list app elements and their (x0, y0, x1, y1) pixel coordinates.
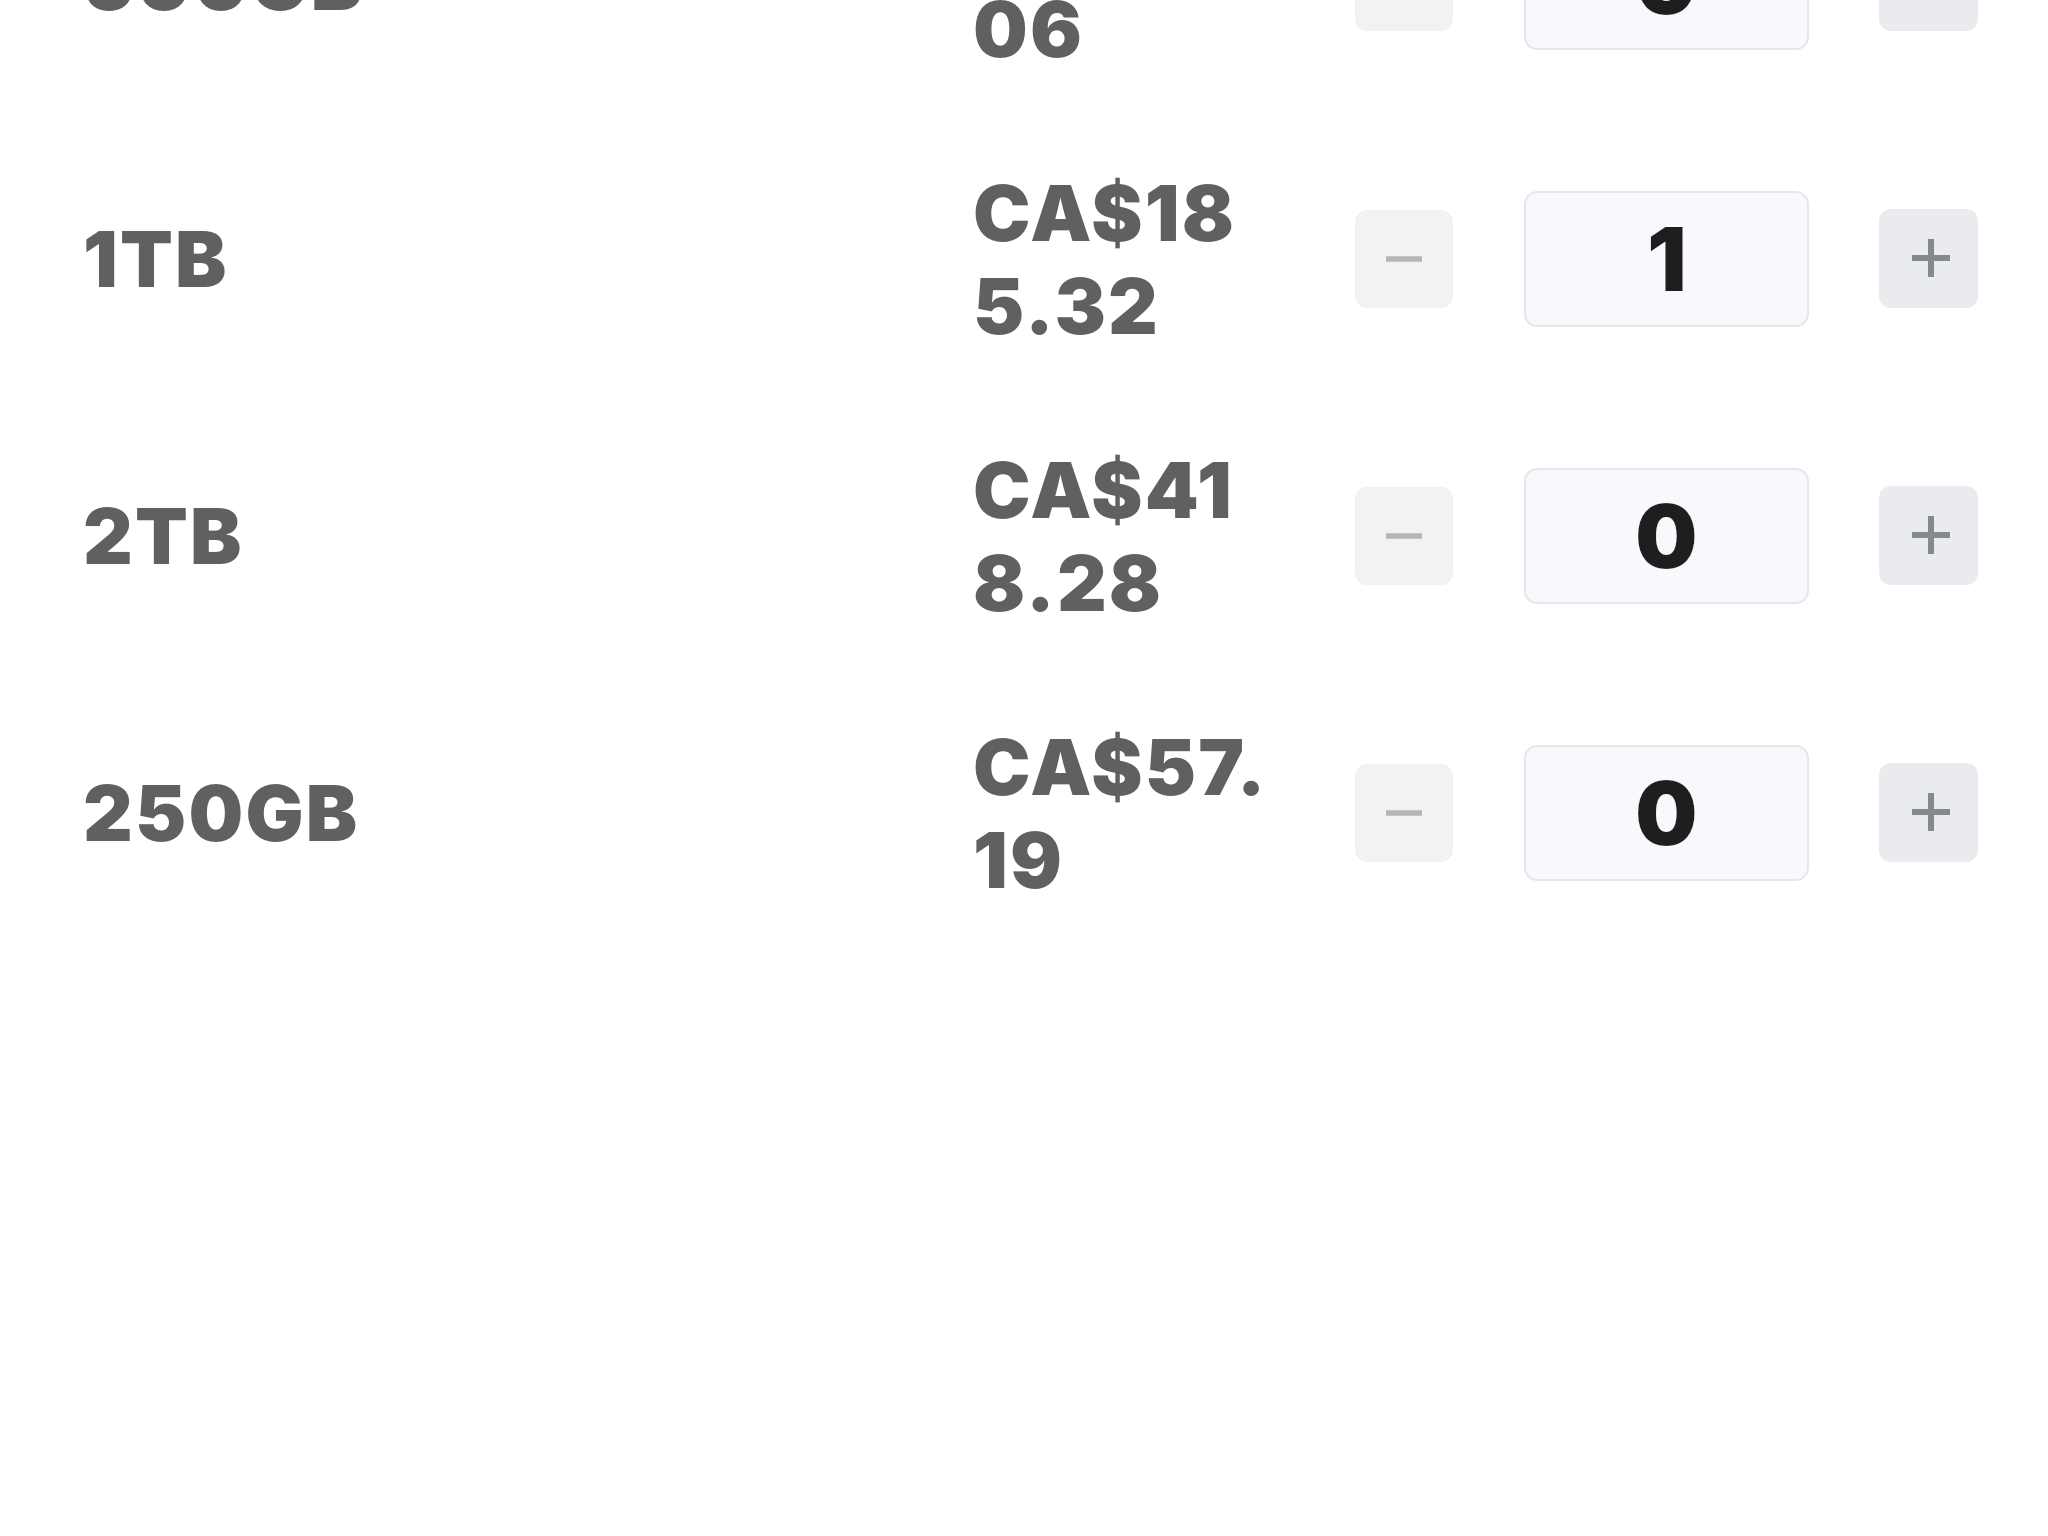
button[interactable]: 0 (1524, 745, 1809, 881)
button[interactable]: Decrease quantity (1355, 210, 1453, 308)
staticText: CA$41 (973, 443, 1234, 536)
staticText: 0 (1635, 0, 1698, 35)
staticText: 5.32 (973, 259, 1161, 352)
staticText: 1TB (83, 212, 229, 305)
staticText: 8.28 (973, 536, 1164, 629)
staticText: 1 (1647, 206, 1687, 312)
staticText: 0 (1635, 760, 1698, 866)
staticText: CA$18 (973, 166, 1237, 259)
staticText: 0 (1635, 483, 1698, 589)
button[interactable]: Decrease quantity (1355, 764, 1453, 862)
button[interactable]: Increase quantity (1879, 209, 1978, 308)
button[interactable]: 1 (1524, 191, 1809, 327)
button[interactable]: Decrease quantity (1355, 487, 1453, 585)
button[interactable]: Increase quantity (1879, 763, 1978, 862)
button[interactable]: 0 (1524, 468, 1809, 604)
staticText: CA$57. (973, 720, 1268, 813)
staticText: 500GB (83, 0, 365, 28)
staticText: 19 (973, 813, 1065, 906)
staticText: 250GB (83, 766, 360, 859)
button[interactable]: Increase quantity (1879, 486, 1978, 585)
staticText: 06 (973, 0, 1085, 75)
button[interactable]: 0 (1524, 0, 1809, 50)
staticText: 2TB (83, 489, 244, 582)
